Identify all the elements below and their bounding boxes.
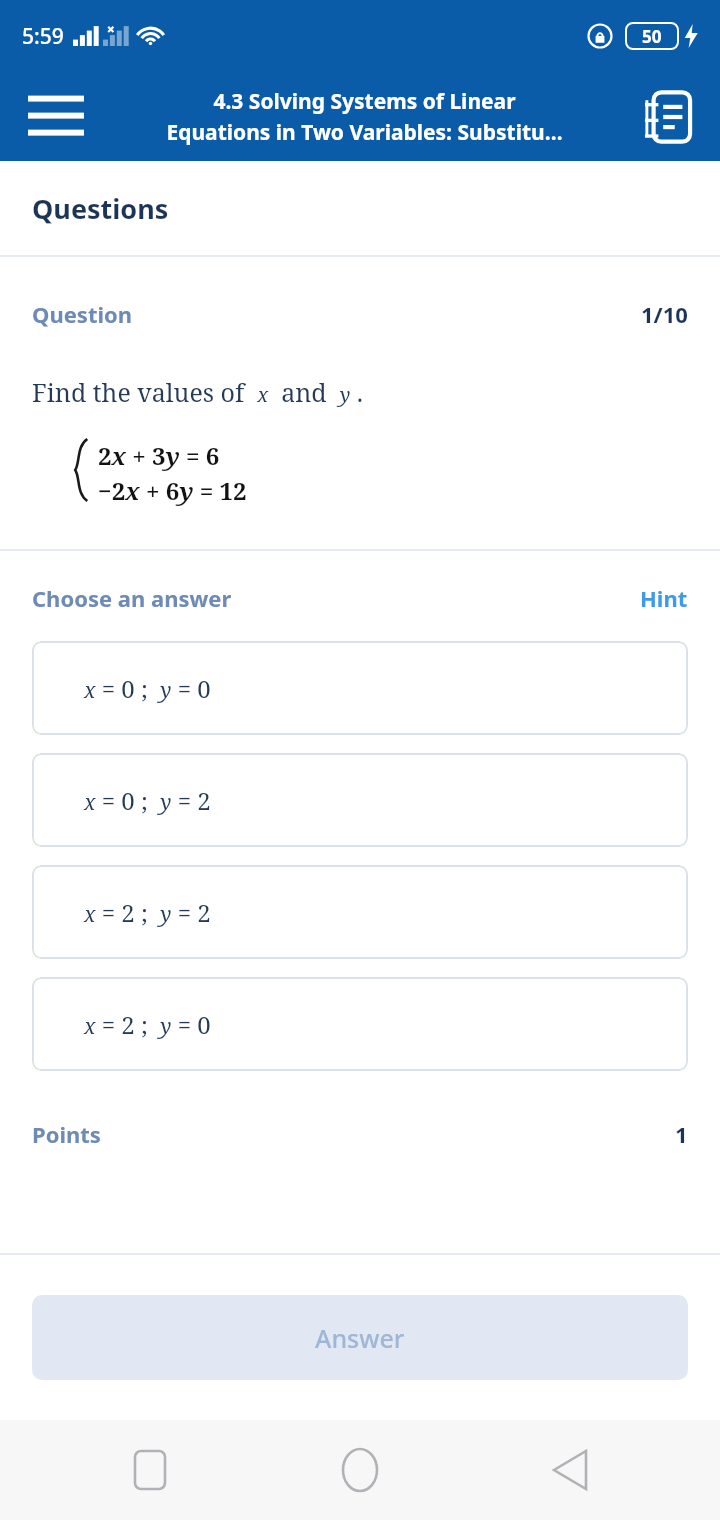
- staticText: 4.3 Solving Systems of Linear Equations …: [166, 87, 563, 146]
- button[interactable]: x = 0 ; y = 0: [32, 641, 688, 735]
- button[interactable]: x = 2 ; y = 0: [32, 977, 688, 1071]
- staticText: 1: [675, 1119, 688, 1149]
- staticText: 2x + 3y = 6: [98, 439, 220, 472]
- button[interactable]: Back: [510, 1420, 630, 1520]
- staticText: Question: [32, 299, 133, 329]
- button[interactable]: Home: [300, 1420, 420, 1520]
- button[interactable]: Menu: [0, 74, 112, 160]
- staticText: x = 0 ; y = 2: [84, 784, 211, 817]
- button[interactable]: x = 2 ; y = 2: [32, 865, 688, 959]
- staticText: x = 0 ; y = 0: [84, 672, 211, 705]
- button[interactable]: Answer: [32, 1295, 688, 1380]
- staticText: Answer: [315, 1321, 405, 1355]
- button[interactable]: x = 0 ; y = 2: [32, 753, 688, 847]
- staticText: 5:59: [22, 22, 64, 51]
- staticText: Questions: [32, 190, 169, 227]
- staticText: Points: [32, 1119, 101, 1149]
- button[interactable]: Notes: [616, 74, 720, 160]
- staticText: Hint: [640, 583, 688, 613]
- staticText: Choose an answer: [32, 583, 232, 613]
- staticText: 50: [642, 25, 662, 48]
- staticText: Find the values of x and y .: [32, 375, 364, 409]
- button[interactable]: Recents: [90, 1420, 210, 1520]
- staticText: 1/10: [641, 299, 688, 329]
- staticText: x = 2 ; y = 0: [84, 1008, 211, 1041]
- staticText: x = 2 ; y = 2: [84, 896, 211, 929]
- button[interactable]: Hint: [640, 583, 688, 613]
- staticText: −2x + 6y = 12: [98, 474, 247, 507]
